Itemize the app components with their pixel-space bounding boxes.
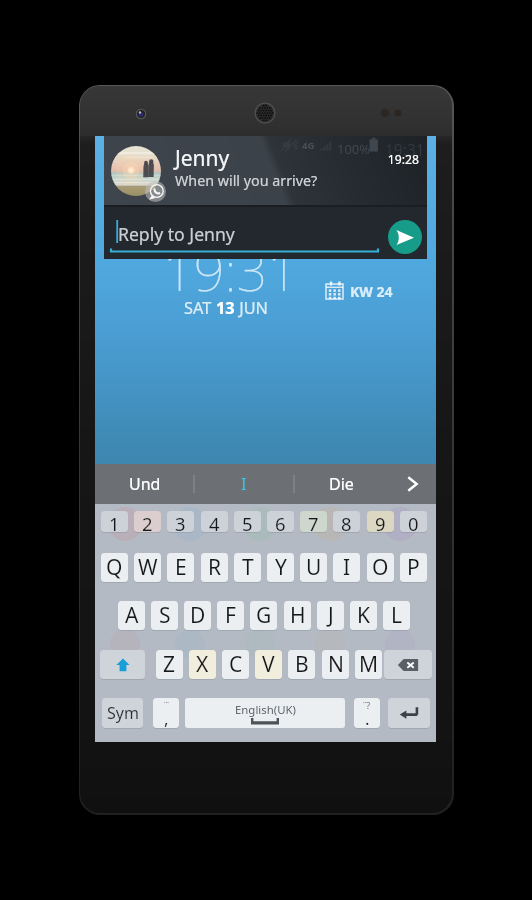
button[interactable]: Reply to Jenny	[110, 220, 379, 253]
staticText: 8	[341, 511, 352, 532]
staticText: F	[225, 601, 236, 630]
staticText: 3	[175, 511, 186, 532]
staticText: 19:28	[104, 151, 419, 169]
staticText: Z	[163, 650, 176, 679]
staticText: W	[138, 553, 158, 582]
button[interactable]: 2	[134, 511, 161, 532]
staticText: 13	[216, 297, 235, 319]
staticText: Jenny	[175, 144, 375, 176]
button[interactable]: A	[118, 601, 145, 630]
button[interactable]: Q	[101, 553, 128, 582]
button[interactable]: X	[189, 650, 216, 679]
staticText: E	[175, 553, 187, 582]
staticText: Y	[275, 553, 287, 582]
staticText: 4	[209, 511, 220, 532]
staticText: ˙˙˙	[164, 699, 169, 711]
staticText: N	[328, 650, 344, 679]
button[interactable]: 8	[333, 511, 360, 532]
staticText: Reply to Jenny	[118, 222, 338, 248]
staticText: 7	[308, 511, 319, 532]
button[interactable]: J	[317, 601, 344, 630]
staticText: 19:31	[385, 139, 435, 162]
button[interactable]: O	[367, 553, 394, 582]
button[interactable]: G	[250, 601, 277, 630]
staticText: 100%	[337, 140, 377, 160]
staticText: M	[359, 650, 379, 679]
button[interactable]: 0	[400, 511, 427, 532]
button[interactable]: 5	[234, 511, 261, 532]
button[interactable]: I	[333, 553, 360, 582]
button[interactable]: M	[355, 650, 382, 679]
staticText: When will you arrive?	[175, 171, 415, 192]
staticText: X	[196, 650, 209, 679]
button[interactable]: Sym	[102, 698, 143, 728]
button[interactable]: Space	[185, 698, 345, 728]
button[interactable]: I	[194, 464, 294, 504]
button[interactable]: 3	[167, 511, 194, 532]
button[interactable]: More suggestions	[388, 464, 436, 504]
button[interactable]: N	[322, 650, 349, 679]
button[interactable]: Send	[388, 220, 422, 254]
button[interactable]: Z	[156, 650, 183, 679]
button[interactable]: C	[222, 650, 249, 679]
button[interactable]: B	[288, 650, 315, 679]
button[interactable]: Backspace	[384, 650, 432, 679]
staticText: Die	[329, 473, 354, 495]
staticText: 5	[242, 511, 253, 532]
button[interactable]: Y	[267, 553, 294, 582]
staticText: SAT	[184, 297, 216, 319]
button[interactable]: V	[255, 650, 282, 679]
button[interactable]: T	[234, 553, 261, 582]
staticText: 6	[275, 511, 286, 532]
staticText: KW 24	[350, 282, 430, 303]
button[interactable]: W	[134, 553, 161, 582]
staticText: S	[159, 601, 171, 630]
staticText: JUN	[235, 297, 268, 319]
button[interactable]: E	[167, 553, 194, 582]
staticText: Sym	[107, 702, 139, 724]
staticText: ,	[164, 707, 169, 728]
button[interactable]: D	[184, 601, 211, 630]
button[interactable]	[104, 136, 427, 205]
staticText: O	[372, 553, 389, 582]
button[interactable]: Und	[95, 464, 194, 504]
button[interactable]: U	[300, 553, 327, 582]
staticText: ˙˙?	[363, 699, 371, 711]
staticText: V	[262, 650, 275, 679]
staticText: English(UK)	[235, 702, 296, 718]
button[interactable]: H	[284, 601, 311, 630]
staticText: R	[208, 553, 222, 582]
button[interactable]: F	[217, 601, 244, 630]
staticText: I	[343, 553, 351, 582]
button[interactable]: L	[383, 601, 410, 630]
staticText: L	[391, 601, 403, 630]
staticText: .	[365, 707, 370, 728]
button[interactable]: K	[350, 601, 377, 630]
button[interactable]: P	[400, 553, 427, 582]
staticText: 9	[375, 511, 386, 532]
staticText: D	[190, 601, 206, 630]
staticText: 2	[142, 511, 153, 532]
staticText: H	[290, 601, 306, 630]
button[interactable]: Shift	[100, 650, 145, 679]
staticText: I	[241, 473, 247, 495]
staticText: C	[229, 650, 243, 679]
button[interactable]: 9	[367, 511, 394, 532]
staticText: Und	[129, 473, 161, 495]
button[interactable]: S	[151, 601, 178, 630]
button[interactable]: 1	[101, 511, 128, 532]
staticText: U	[306, 553, 322, 582]
button[interactable]: 7	[300, 511, 327, 532]
staticText: 1	[109, 511, 120, 532]
staticText: 4G	[302, 139, 322, 153]
button[interactable]: ˙˙˙	[153, 698, 179, 728]
button[interactable]: ˙˙?	[354, 698, 380, 728]
staticText: G	[256, 601, 272, 630]
button[interactable]: Die	[294, 464, 388, 504]
staticText: K	[357, 601, 370, 630]
staticText: A	[125, 601, 139, 630]
button[interactable]: R	[201, 553, 228, 582]
button[interactable]: 4	[201, 511, 228, 532]
button[interactable]: 6	[267, 511, 294, 532]
button[interactable]: Enter	[388, 698, 430, 728]
